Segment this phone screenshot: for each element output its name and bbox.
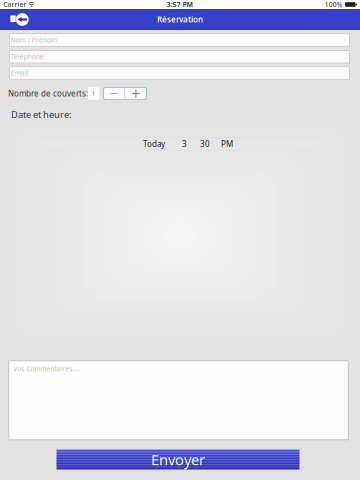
staticText: 3 (182, 139, 187, 149)
staticText: 3:57 PM (167, 0, 193, 9)
staticText: Date et heure: (11, 108, 72, 121)
button[interactable]: Decrease number of guests (103, 87, 125, 100)
staticText: PM (221, 139, 233, 149)
button[interactable]: Envoyer (55, 448, 301, 471)
staticText: Réservation (157, 14, 203, 25)
staticText: Carrier (3, 0, 26, 9)
staticText: Email (11, 69, 29, 77)
staticText: Today (143, 139, 165, 149)
staticText: 1 (92, 90, 95, 97)
staticText: Envoyer (151, 450, 205, 469)
staticText: 30 (200, 139, 210, 149)
button[interactable]: Back (0, 9, 39, 30)
staticText: Vos Commentaires.... (13, 364, 80, 373)
staticText: 100% (325, 0, 343, 9)
staticText: Nom / Prénom (11, 36, 57, 44)
staticText: Nombre de couverts: (8, 88, 88, 99)
staticText: Téléphone (11, 52, 44, 61)
button[interactable]: Increase number of guests (125, 87, 146, 100)
